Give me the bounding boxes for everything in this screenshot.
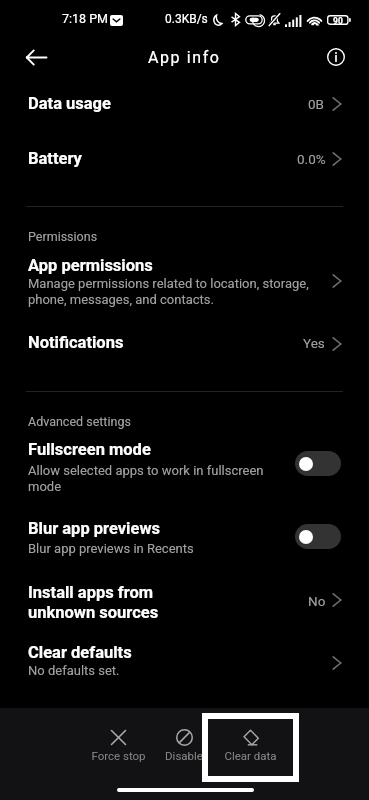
staticText: Battery <box>28 149 82 168</box>
staticText: Allow selected apps to work in fullscree… <box>28 463 264 494</box>
staticText: No defaults set. <box>28 663 120 678</box>
button[interactable]: Toggle <box>295 524 341 549</box>
button[interactable]: Back <box>18 40 55 74</box>
button[interactable]: Clear defaults <box>0 641 369 685</box>
staticText: Notifications <box>28 333 124 352</box>
staticText: App permissions <box>28 256 153 275</box>
button[interactable]: Toggle <box>295 451 341 476</box>
staticText: Clear data <box>224 749 277 762</box>
staticText: Disable <box>165 749 203 762</box>
button[interactable]: App permissions <box>0 254 369 312</box>
staticText: App info <box>148 48 221 67</box>
button[interactable]: Blur app previews <box>0 517 369 561</box>
staticText: 0.0% <box>297 151 326 167</box>
staticText: Fullscreen mode <box>28 440 151 459</box>
staticText: Permissions <box>28 229 98 244</box>
staticText: Manage permissions related to location, … <box>28 276 309 307</box>
staticText: Advanced settings <box>28 414 131 429</box>
button[interactable]: Force stop <box>84 729 152 762</box>
button[interactable]: Disable <box>150 729 218 762</box>
button[interactable]: Notifications <box>0 329 369 357</box>
button[interactable]: Install apps from unknown sources <box>0 581 369 625</box>
staticText: 0.3KB/s <box>165 12 208 26</box>
staticText: Data usage <box>28 94 111 113</box>
staticText: 0B <box>308 96 324 112</box>
staticText: Yes <box>303 335 325 351</box>
button[interactable]: App details <box>321 42 351 72</box>
button[interactable]: Fullscreen mode <box>0 438 369 496</box>
staticText: Blur app previews in Recents <box>28 541 194 556</box>
staticText: 7:18 PM <box>62 11 109 26</box>
button[interactable]: Battery <box>0 145 369 173</box>
staticText: 90 <box>333 16 343 26</box>
button[interactable]: Data usage <box>0 90 369 118</box>
staticText: Clear defaults <box>28 643 132 662</box>
staticText: Blur app previews <box>28 519 160 538</box>
staticText: No <box>308 593 326 609</box>
staticText: Install apps from unknown sources <box>28 583 159 622</box>
staticText: Force stop <box>91 749 146 762</box>
button[interactable]: Clear data <box>216 729 284 762</box>
